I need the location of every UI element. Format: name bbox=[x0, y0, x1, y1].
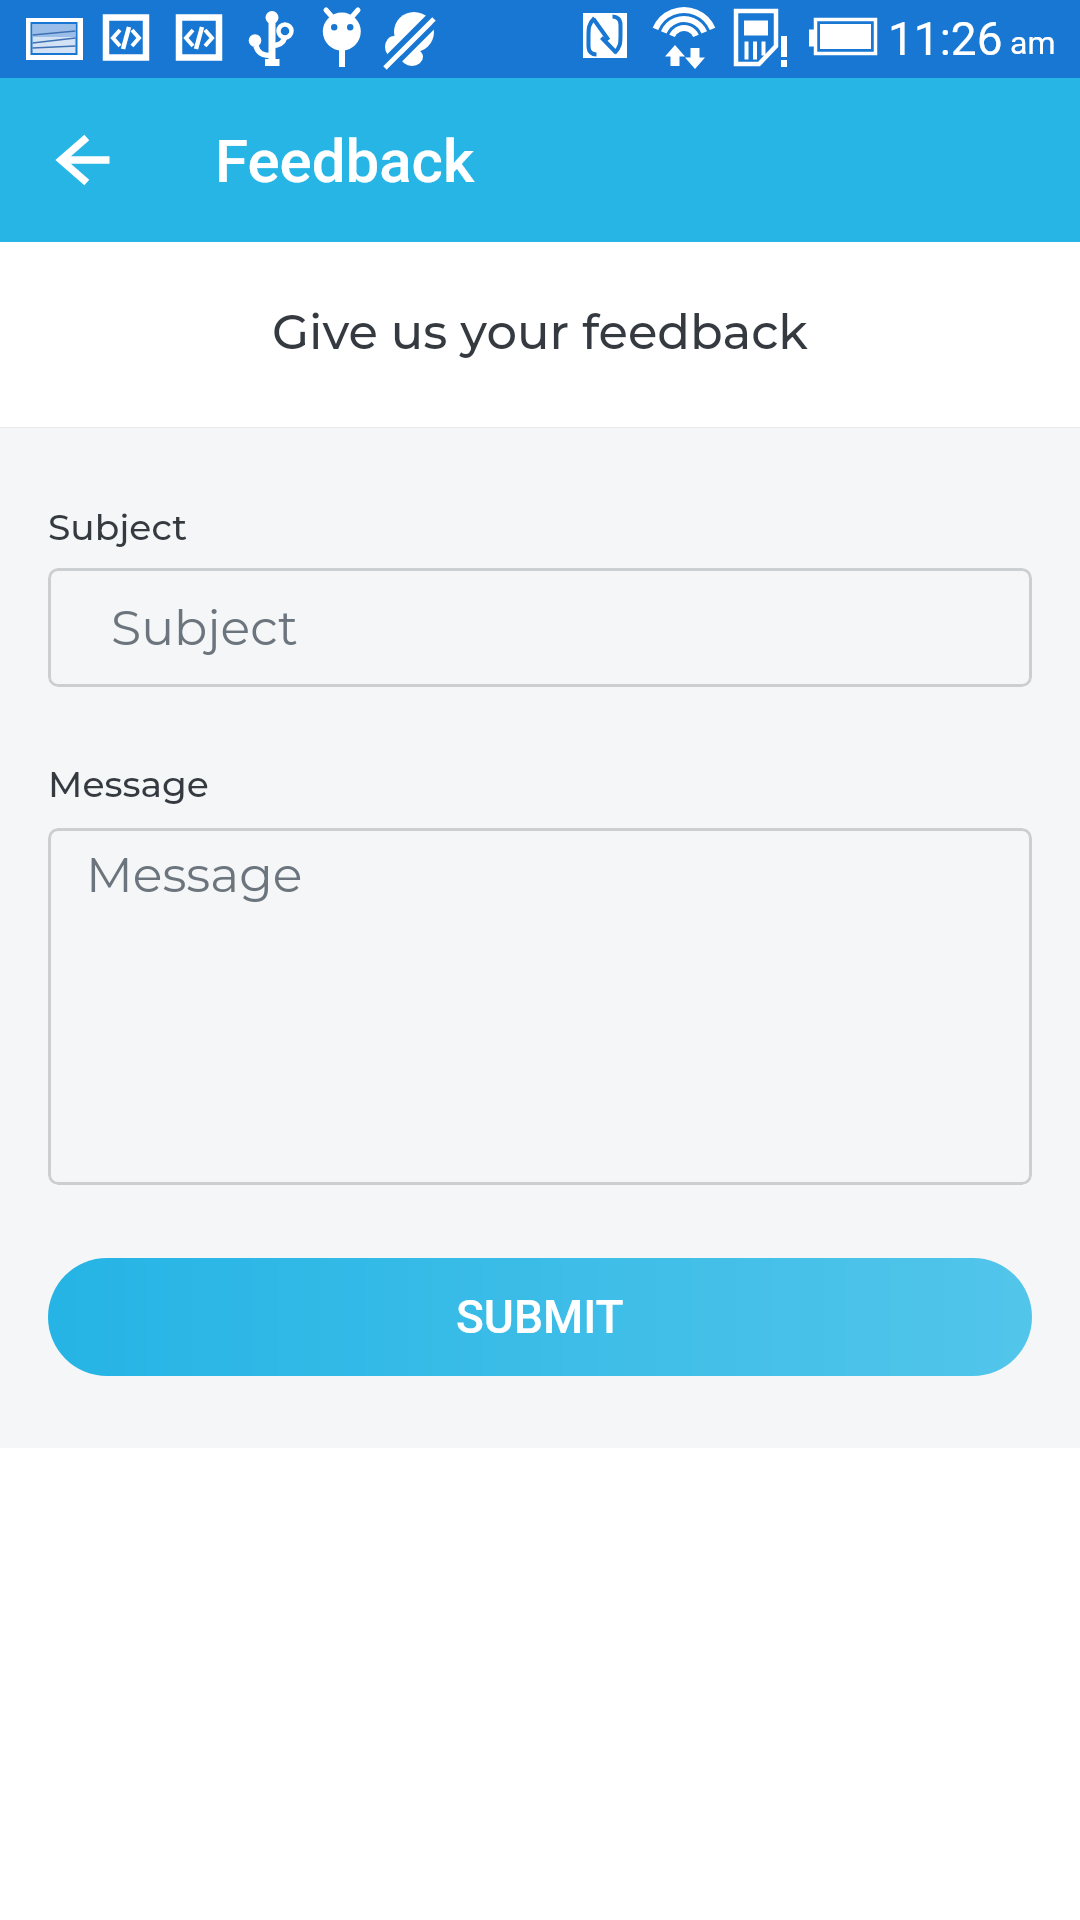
staticText: Give us your feedback bbox=[272, 303, 808, 362]
staticText: am bbox=[1010, 24, 1056, 62]
staticText: Subject bbox=[48, 505, 188, 549]
button[interactable]: Message bbox=[48, 828, 1032, 1185]
staticText: 11:26 bbox=[888, 12, 1003, 66]
button[interactable]: Back bbox=[33, 123, 107, 197]
staticText: Subject bbox=[111, 598, 298, 658]
staticText: SUBMIT bbox=[456, 1290, 624, 1344]
staticText: Feedback bbox=[215, 126, 475, 196]
staticText: Message bbox=[48, 762, 209, 806]
staticText: Message bbox=[86, 845, 303, 905]
button[interactable]: Subject bbox=[48, 568, 1032, 687]
button[interactable]: SUBMIT bbox=[48, 1258, 1032, 1376]
